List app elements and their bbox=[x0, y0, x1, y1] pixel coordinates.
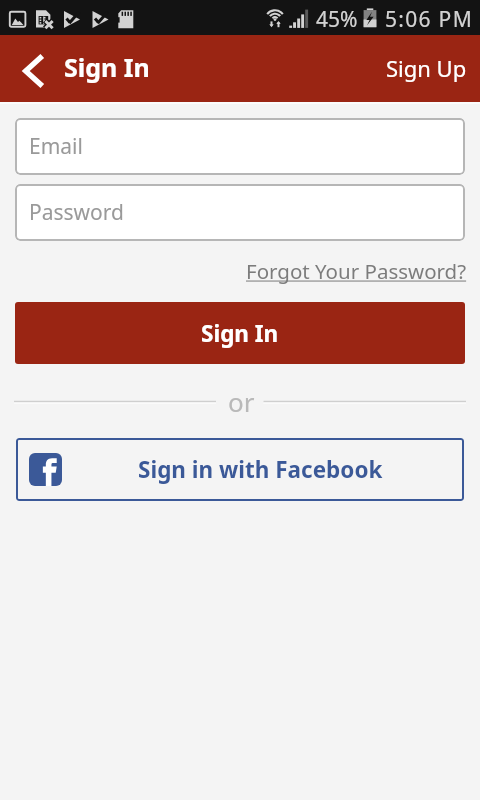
button[interactable]: Forgot Your Password? bbox=[246, 257, 467, 285]
staticText: Password bbox=[29, 198, 124, 227]
button[interactable]: Email bbox=[15, 118, 465, 175]
staticText: Sign In bbox=[64, 50, 150, 84]
button[interactable]: Password bbox=[15, 184, 465, 241]
staticText: 5:06 PM bbox=[385, 5, 473, 34]
staticText: Sign Up bbox=[386, 53, 467, 83]
staticText: 45% bbox=[316, 5, 358, 34]
staticText: Sign in with Facebook bbox=[138, 454, 383, 485]
staticText: Sign In bbox=[201, 318, 279, 349]
button[interactable]: Sign in with Facebook bbox=[16, 438, 464, 501]
staticText: or bbox=[228, 384, 255, 414]
button[interactable]: Sign In bbox=[15, 302, 465, 364]
button[interactable]: Back bbox=[10, 48, 56, 94]
staticText: Forgot Your Password? bbox=[246, 257, 467, 285]
staticText: Email bbox=[29, 132, 83, 161]
button[interactable]: Sign Up bbox=[386, 54, 480, 84]
